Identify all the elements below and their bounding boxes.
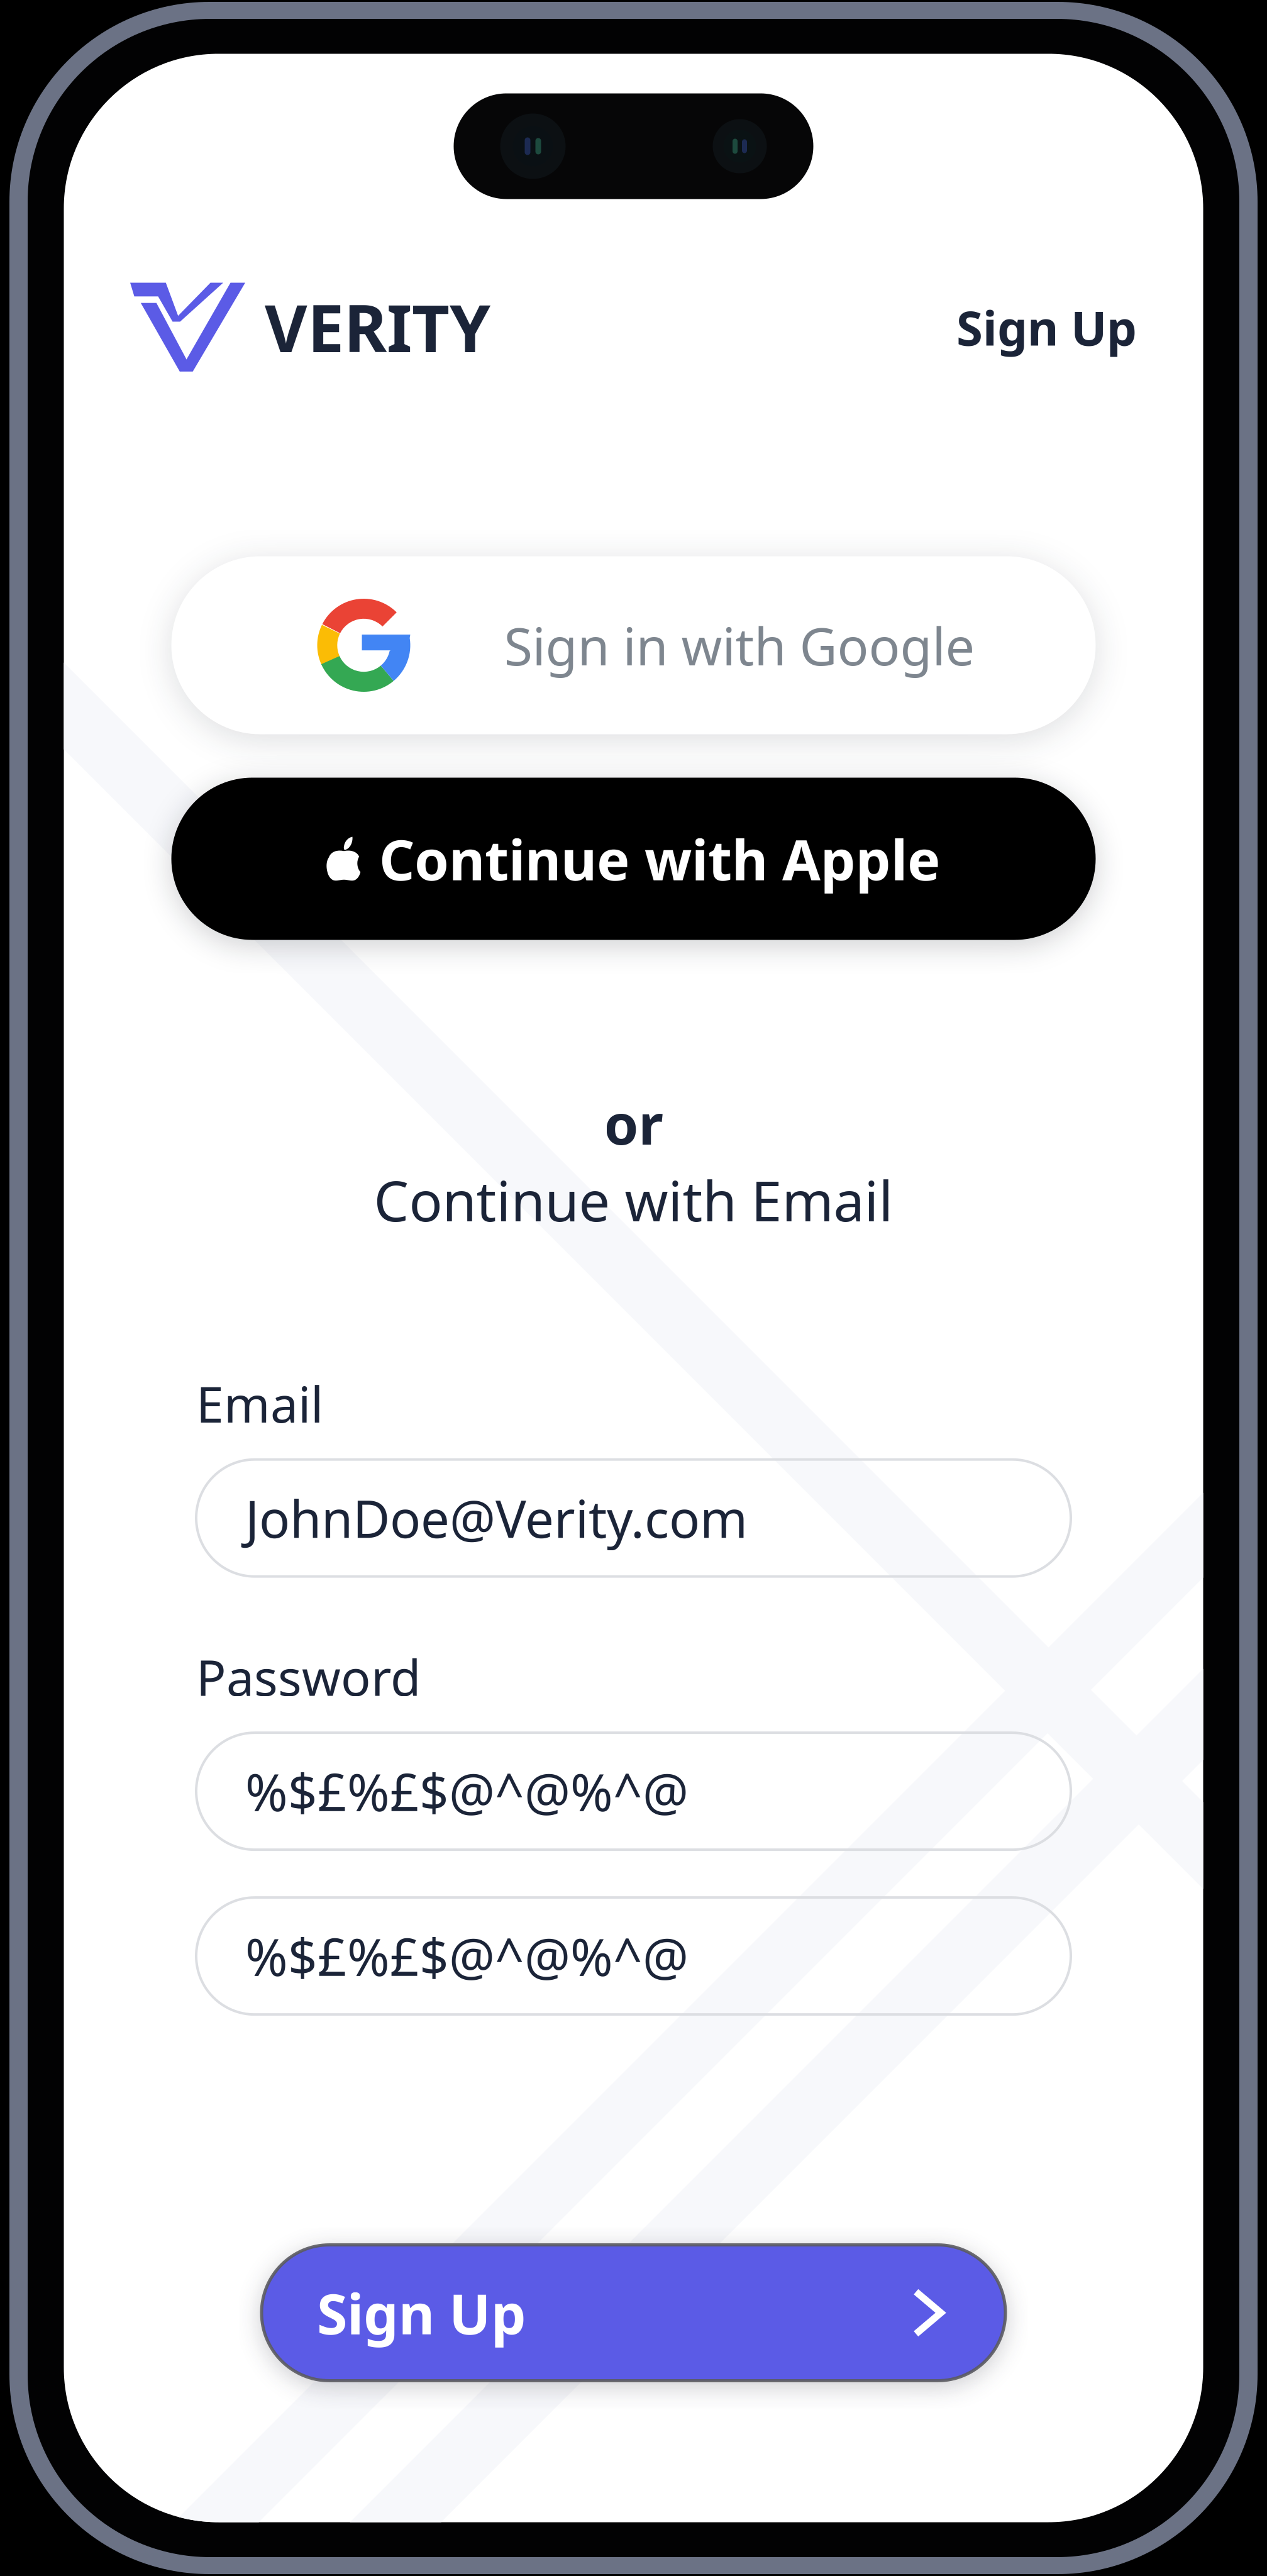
staticText: Email (196, 1371, 323, 1436)
button[interactable]: Sign in with Google (171, 556, 1096, 734)
button[interactable]: Sign Up (939, 288, 1137, 366)
staticText: or (604, 1086, 663, 1160)
staticText: %$£%£$@^@%^@ (245, 1922, 689, 1990)
button[interactable]: Sign Up (262, 2245, 1005, 2381)
staticText: JohnDoe@Verity.com (245, 1484, 748, 1552)
staticText: Password (196, 1644, 421, 1709)
staticText: Sign Up (956, 295, 1137, 359)
staticText: Continue with Email (374, 1163, 893, 1237)
button[interactable]: Continue with Apple (171, 778, 1096, 940)
staticText: Sign Up (317, 2276, 526, 2350)
staticText: Sign in with Google (504, 611, 975, 680)
staticText: Continue with Apple (379, 822, 941, 896)
staticText: VERITY (265, 284, 490, 370)
staticText: %$£%£$@^@%^@ (245, 1757, 689, 1825)
